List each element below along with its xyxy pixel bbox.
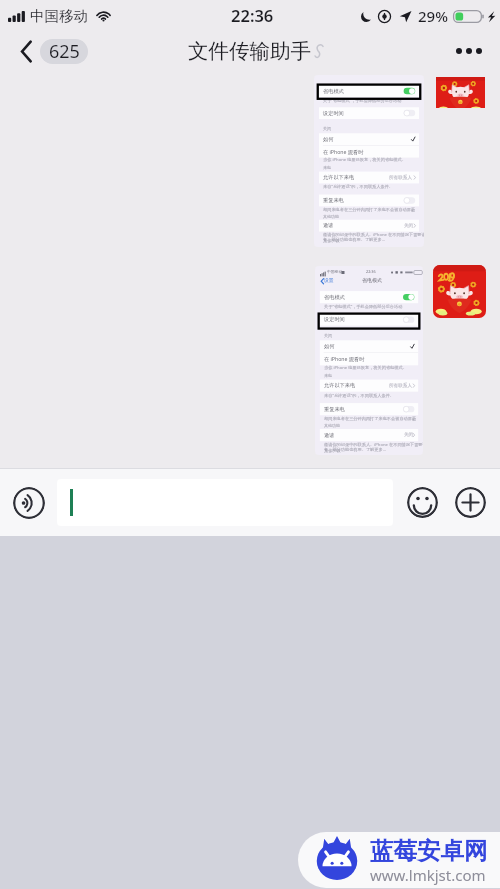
- staticText: 邀请: [324, 432, 335, 439]
- staticText: 中国移动: [30, 7, 88, 25]
- staticText: 关于“省电模式”，手机会降低部分后台活动: [323, 98, 402, 104]
- staticText: 来电: [324, 373, 332, 378]
- staticText: 省电模式: [323, 88, 344, 95]
- staticText: 重复来电: [323, 197, 344, 204]
- button[interactable]: Sticker: [436, 77, 485, 108]
- button[interactable]: More actions: [455, 487, 486, 518]
- staticText: 来电: [323, 165, 331, 170]
- staticText: 22:36: [231, 4, 274, 26]
- staticText: www.lmkjst.com: [370, 865, 486, 885]
- staticText: 邀请你的记录中的联系人。iPhone 在不同情况下需要请联系你的设: [323, 232, 424, 243]
- staticText: 29%: [418, 6, 448, 26]
- staticText: 邀请: [323, 222, 334, 229]
- staticText: 邀请你的记录中的联系人。iPhone 在不同情况下需要请联系你的设: [324, 442, 423, 453]
- staticText: 备，部分功能也有用。了解更多…: [324, 447, 386, 453]
- staticText: 如何: [323, 136, 334, 143]
- staticText: 如何: [324, 343, 335, 350]
- staticText: 当你 iPhone 电量已恢复，将关闭省电模式。: [323, 157, 406, 163]
- staticText: 相同来电者在三分钟内再打了来电不会被自动屏蔽: [323, 207, 416, 212]
- staticText: 关于“省电模式”，手机会降低部分后台活动: [324, 304, 403, 310]
- staticText: 所有联系人: [389, 175, 412, 181]
- staticText: 在 iPhone 观看时: [324, 355, 365, 362]
- staticText: 文件传输助手: [188, 38, 311, 64]
- button[interactable]: Emoji: [407, 487, 438, 518]
- button[interactable]: Screenshot of Low Power Mode settings wi…: [315, 266, 423, 455]
- staticText: 省电模式: [362, 277, 382, 283]
- staticText: 其他功能: [323, 214, 339, 219]
- staticText: 中国移动: [327, 269, 343, 274]
- staticText: 设定时间: [324, 316, 345, 323]
- staticText: 关闭: [324, 333, 332, 338]
- button[interactable]: Back, 625 unread: [21, 34, 88, 68]
- staticText: 关闭: [404, 432, 414, 438]
- button[interactable]: Screenshot of Low Power Mode settings: [314, 75, 424, 247]
- staticText: 来自“允许通话”的，不同联系人条件。: [323, 184, 394, 190]
- staticText: 当你 iPhone 电量已恢复，将关闭省电模式。: [324, 365, 407, 371]
- staticText: 22:36: [366, 269, 376, 274]
- staticText: 省电模式: [324, 294, 345, 301]
- staticText: 设定时间: [323, 110, 344, 117]
- staticText: 在 iPhone 观看时: [323, 148, 364, 155]
- staticText: 625: [49, 39, 80, 64]
- staticText: 重复来电: [324, 406, 345, 413]
- button[interactable]: More options: [450, 34, 488, 68]
- staticText: 蓝莓安卓网: [370, 836, 488, 866]
- staticText: 其他功能: [324, 423, 340, 428]
- staticText: 来自“允许通话”的，不同联系人条件。: [324, 393, 395, 399]
- staticText: 备，部分功能也有用。了解更多…: [323, 237, 385, 243]
- button[interactable]: Voice message: [13, 487, 45, 519]
- staticText: 所有联系人: [389, 383, 412, 389]
- staticText: 允许以下来电: [323, 174, 355, 181]
- staticText: 相同来电者在三分钟内再打了来电不会被自动屏蔽: [324, 416, 417, 421]
- button[interactable]: Sticker: [433, 265, 486, 318]
- button[interactable]: [57, 479, 393, 526]
- staticText: 允许以下来电: [324, 382, 356, 389]
- staticText: 关闭: [323, 126, 331, 131]
- staticText: 设置: [324, 277, 334, 283]
- staticText: 关闭: [404, 223, 414, 229]
